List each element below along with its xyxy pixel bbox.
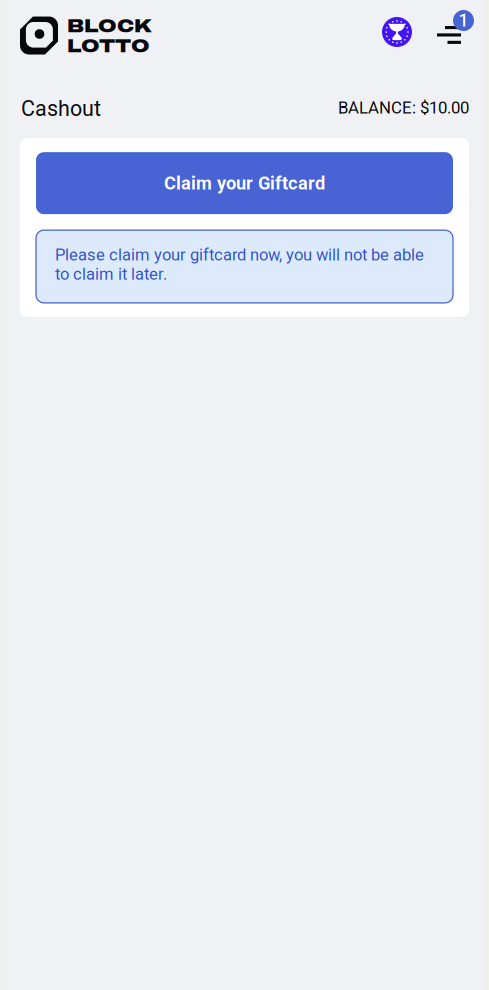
button[interactable]: Token balance xyxy=(382,17,412,47)
staticText: BALANCE: $10.00 xyxy=(338,98,469,118)
staticText: BLOCK xyxy=(67,16,152,36)
staticText: 1 xyxy=(458,10,468,31)
staticText: Cashout xyxy=(21,96,101,121)
staticText: LOTTO xyxy=(67,36,150,56)
button[interactable]: Block Lotto home xyxy=(20,12,152,56)
staticText: Claim your Giftcard xyxy=(164,172,325,194)
staticText: Please claim your giftcard now, you will… xyxy=(55,245,424,284)
button[interactable]: Menu xyxy=(440,10,474,44)
button[interactable]: Claim your Giftcard xyxy=(36,152,453,214)
